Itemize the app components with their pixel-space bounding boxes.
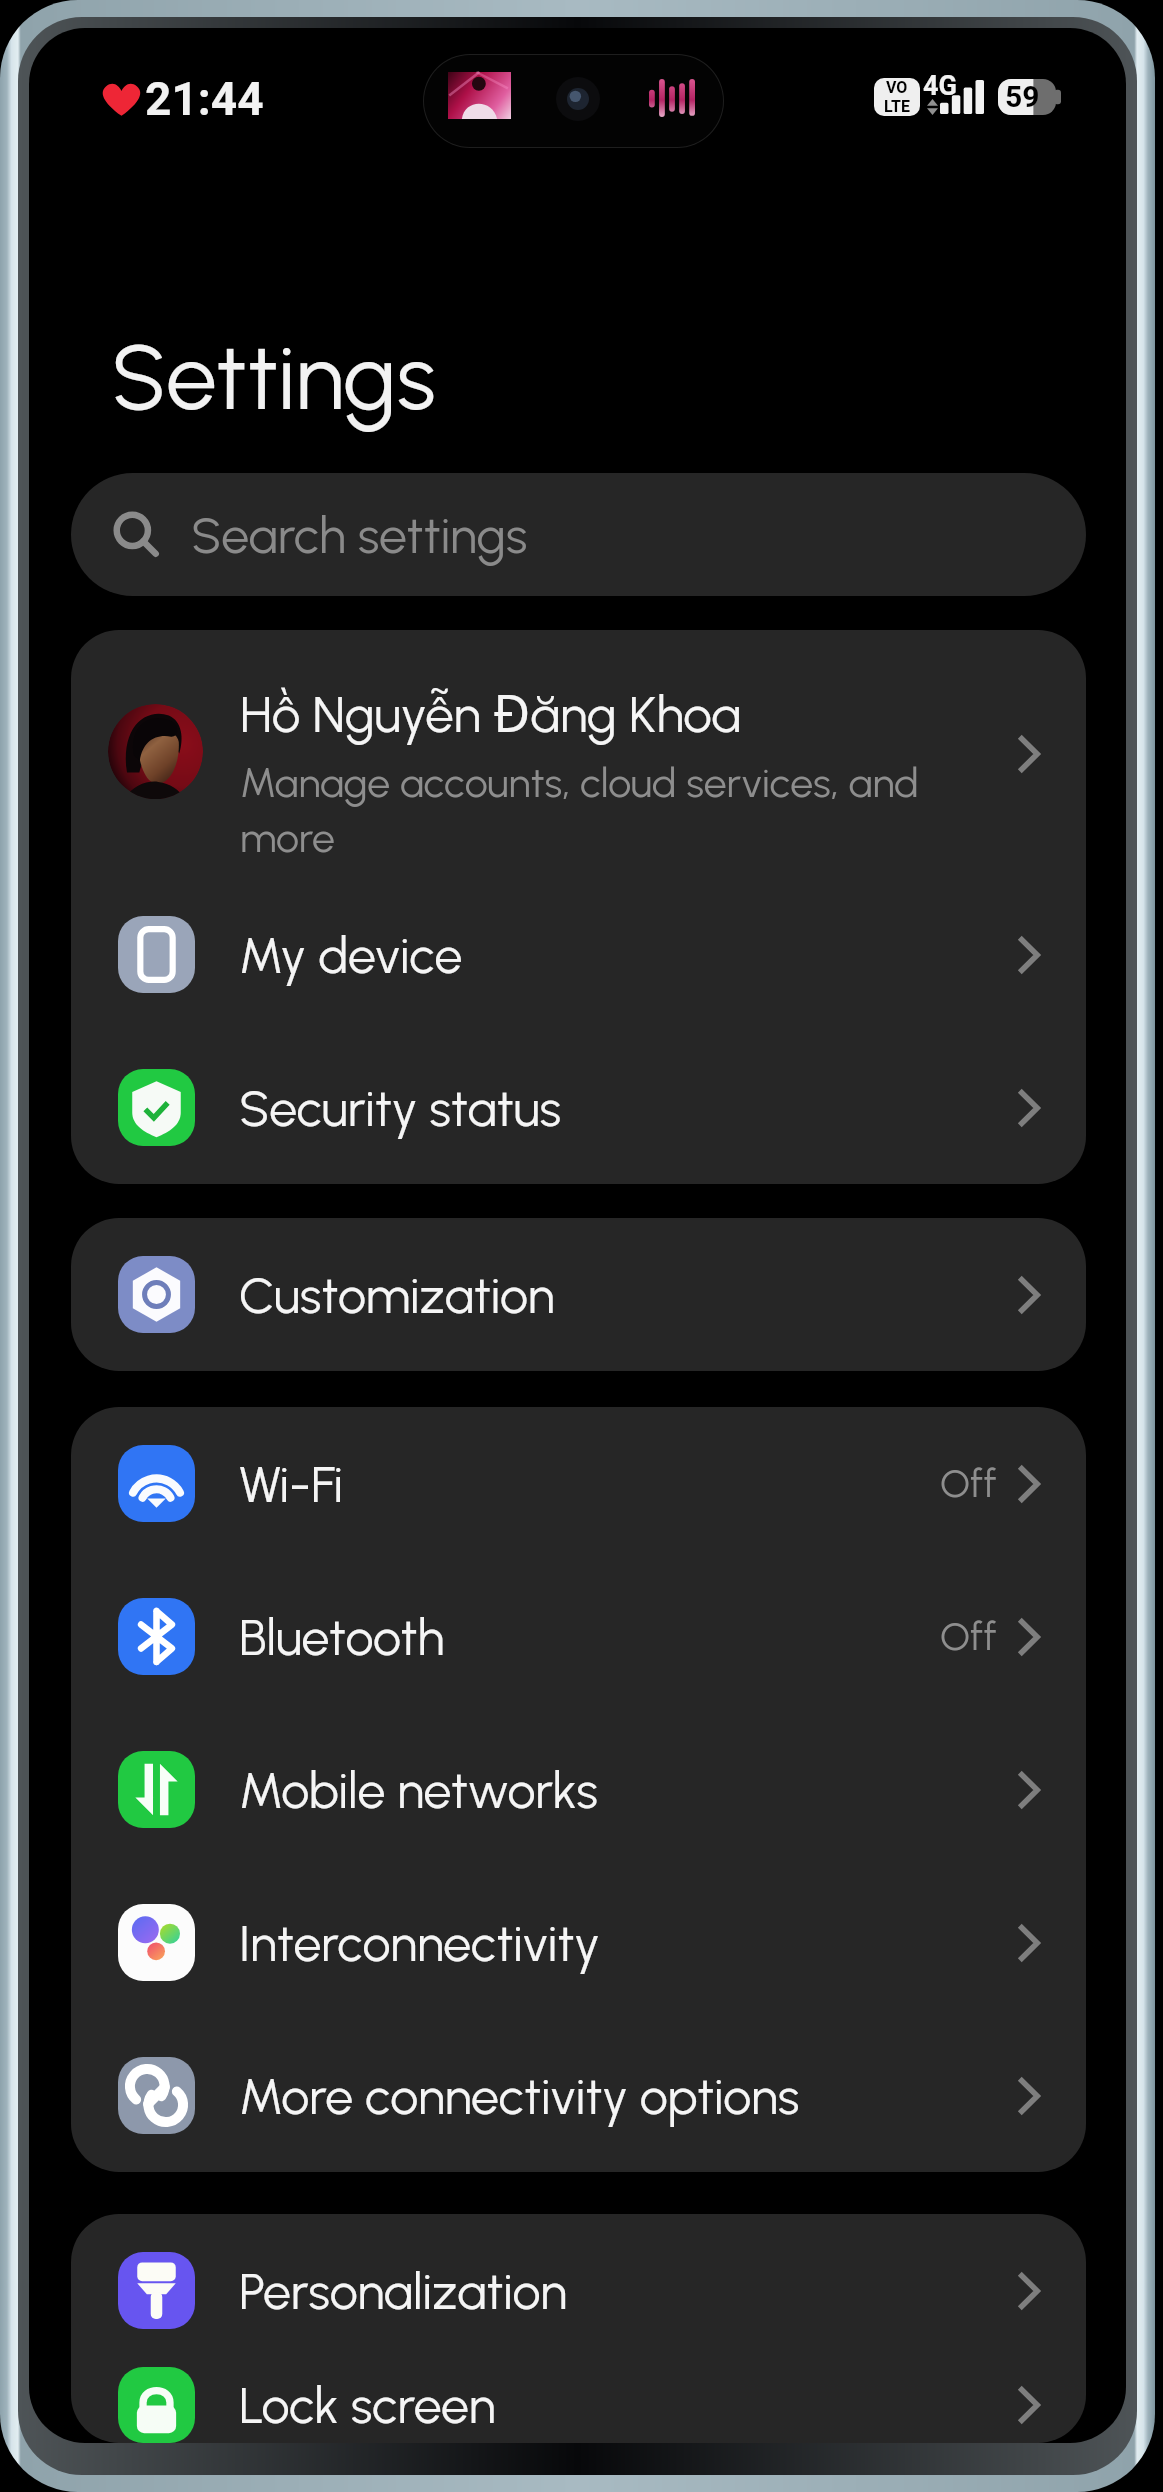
staticText: Wi-Fi [239, 1454, 940, 1514]
staticText: Lock screen [239, 2375, 1019, 2435]
staticText: Search settings [191, 505, 528, 565]
staticText: Mobile networks [239, 1760, 1019, 1820]
staticText: 59 [1005, 79, 1040, 114]
staticText: Hồ Nguyễn Đăng Khoa [240, 677, 741, 746]
button[interactable]: Interconnectivity [71, 1866, 1086, 2019]
button[interactable]: Wi-Fi [71, 1407, 1086, 1560]
button[interactable]: My device [71, 878, 1086, 1031]
staticText: Manage accounts, cloud services, and mor… [240, 758, 940, 862]
staticText: Personalization [239, 2261, 1019, 2321]
staticText: Security status [239, 1078, 1019, 1138]
staticText: 21:44 [145, 72, 264, 126]
staticText: Off [940, 1460, 997, 1507]
button[interactable]: More connectivity options [71, 2019, 1086, 2172]
button[interactable]: Mobile networks [71, 1713, 1086, 1866]
button[interactable]: Customization [71, 1218, 1086, 1371]
staticText: Off [940, 1613, 997, 1660]
button[interactable]: Bluetooth [71, 1560, 1086, 1713]
staticText: 4G [923, 70, 957, 102]
staticText: Settings [111, 323, 436, 432]
button[interactable]: Security status [71, 1031, 1086, 1184]
staticText: Interconnectivity [239, 1913, 1019, 1973]
button[interactable]: Hồ Nguyễn Đăng Khoa [71, 630, 1086, 878]
button[interactable]: Lock screen [71, 2367, 1086, 2443]
staticText: VO [886, 78, 908, 97]
button[interactable]: Personalization [71, 2214, 1086, 2367]
staticText: LTE [884, 97, 910, 116]
staticText: Bluetooth [239, 1607, 940, 1667]
staticText: My device [239, 925, 1019, 985]
button[interactable]: Search settings [71, 473, 1086, 596]
staticText: More connectivity options [239, 2066, 1019, 2126]
staticText: Customization [239, 1265, 1019, 1325]
